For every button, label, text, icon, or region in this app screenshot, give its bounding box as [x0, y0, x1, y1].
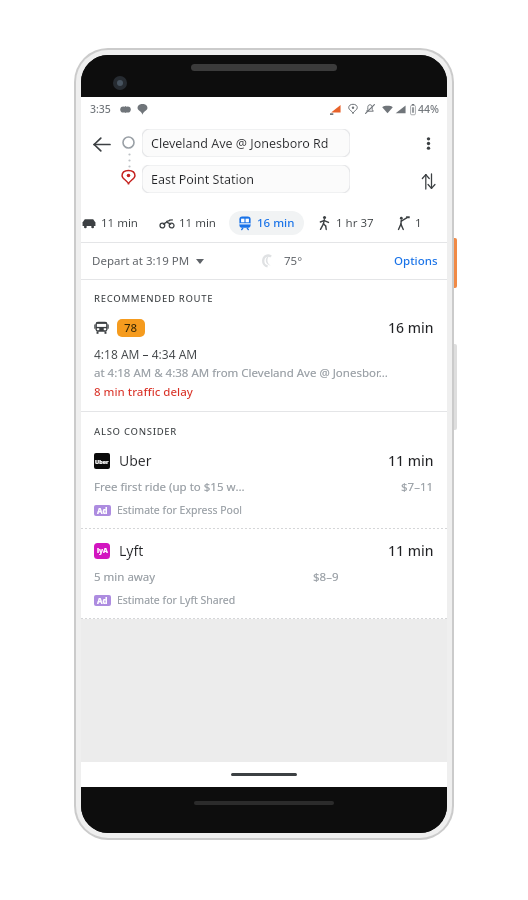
staticText: 11 m: [415, 215, 426, 231]
button[interactable]: Depart at 3:19 PM: [88, 249, 208, 273]
button[interactable]: East Point Station: [142, 165, 350, 193]
staticText: at 4:18 AM & 4:38 AM from Cleveland Ave …: [94, 365, 388, 381]
staticText: Uber: [119, 451, 152, 470]
staticText: Free first ride (up to $15 with code GMA…: [94, 479, 247, 495]
button[interactable]: 1 hr 37: [308, 211, 383, 235]
staticText: 75°: [284, 253, 303, 269]
button[interactable]: More options: [412, 127, 444, 159]
button[interactable]: Back: [84, 127, 118, 161]
button[interactable]: Cleveland Ave @ Jonesboro Rd: [142, 129, 350, 157]
staticText: East Point Station: [151, 171, 254, 188]
staticText: 8 min traffic delay: [94, 384, 193, 400]
button[interactable]: 16 min: [229, 211, 304, 235]
staticText: Cleveland Ave @ Jonesboro Rd: [151, 135, 329, 152]
staticText: Ad: [97, 505, 108, 516]
staticText: Estimate for Express Pool: [117, 503, 243, 517]
staticText: 1 hr 37: [336, 215, 374, 231]
staticText: 11 min: [179, 215, 216, 231]
staticText: 3:35: [90, 102, 111, 116]
button[interactable]: Swap origin and destination: [412, 165, 444, 197]
button[interactable]: Uber: [81, 439, 447, 528]
staticText: $8–9: [313, 569, 339, 585]
staticText: 44%: [418, 102, 439, 116]
button[interactable]: Options: [385, 248, 447, 274]
staticText: Options: [394, 253, 438, 269]
button[interactable]: lyA: [81, 529, 447, 618]
staticText: 78: [124, 320, 138, 336]
staticText: $7–11: [401, 479, 434, 495]
button[interactable]: 11 m: [387, 211, 435, 235]
staticText: 16 min: [257, 215, 295, 231]
staticText: 5 min away: [94, 569, 156, 585]
staticText: Uber: [95, 458, 109, 465]
staticText: 11 min: [388, 451, 434, 470]
staticText: 4:18 AM – 4:34 AM: [94, 346, 198, 362]
staticText: 11 min: [388, 541, 434, 560]
staticText: lyA: [97, 546, 108, 556]
staticText: Ad: [97, 595, 108, 606]
button[interactable]: 11 min: [151, 211, 225, 235]
staticText: ALSO CONSIDER: [94, 425, 178, 438]
staticText: Estimate for Lyft Shared: [117, 593, 236, 607]
button[interactable]: 11 min: [81, 211, 147, 235]
staticText: 11 min: [101, 215, 138, 231]
staticText: Lyft: [119, 541, 144, 560]
staticText: 16 min: [388, 318, 434, 337]
staticText: RECOMMENDED ROUTE: [94, 292, 214, 305]
button[interactable]: RECOMMENDED ROUTE: [81, 280, 447, 411]
staticText: Depart at 3:19 PM: [92, 253, 190, 269]
